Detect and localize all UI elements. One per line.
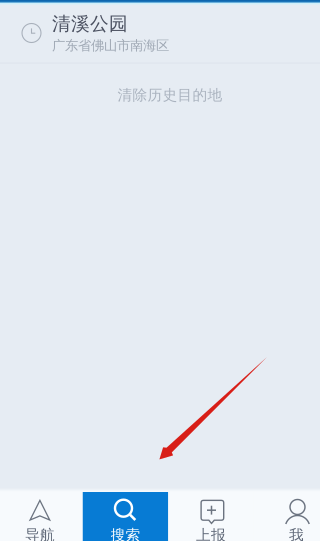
button[interactable]: 导航 [0, 492, 83, 541]
staticText: 搜索 [110, 526, 140, 541]
button[interactable]: 搜索 [83, 492, 168, 541]
button[interactable]: 清溪公园 [0, 5, 320, 61]
staticText: 导航 [25, 526, 55, 541]
staticText: 上报 [196, 526, 226, 541]
button[interactable]: 清除历史目的地 [10, 80, 320, 110]
button[interactable]: 上报 [168, 492, 254, 541]
staticText: 广东省佛山市南海区 [52, 37, 169, 54]
staticText: 清除历史目的地 [117, 86, 222, 104]
staticText: 清溪公园 [52, 12, 128, 35]
staticText: 我 [289, 526, 304, 541]
button[interactable]: 我 [254, 492, 320, 541]
